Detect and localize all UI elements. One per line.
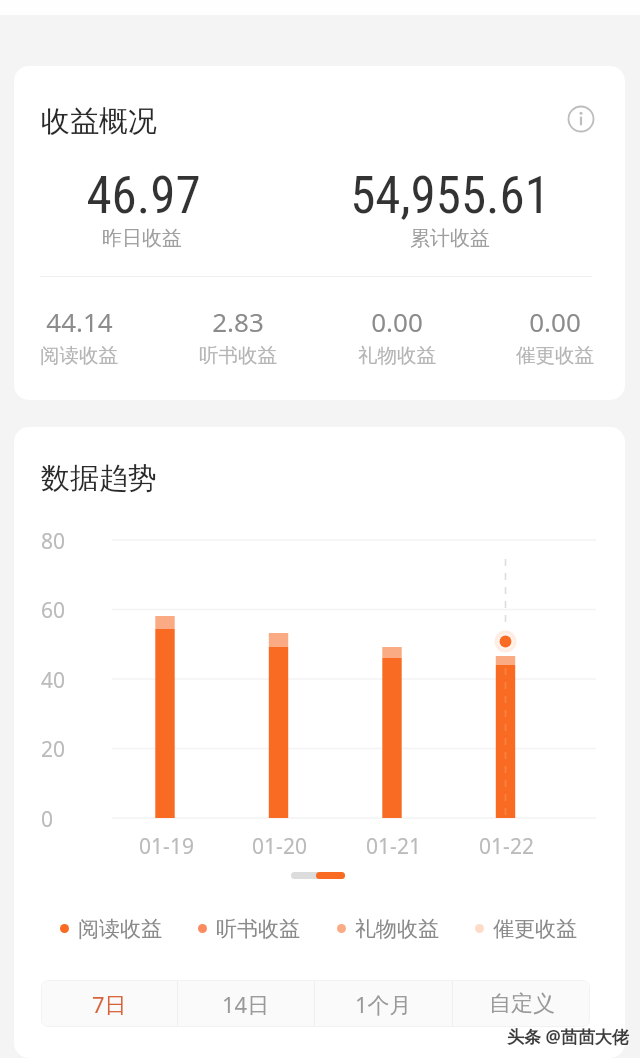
staticText: 数据趋势 bbox=[41, 460, 157, 497]
staticText: 礼物收益 bbox=[355, 916, 439, 940]
staticText: 0.00 bbox=[371, 304, 423, 339]
staticText: 20 bbox=[41, 735, 66, 764]
button[interactable]: 阅读收益 bbox=[60, 916, 162, 940]
button[interactable] bbox=[14, 300, 144, 370]
staticText: 01-20 bbox=[252, 832, 307, 861]
staticText: 60 bbox=[41, 596, 66, 625]
staticText: 54,955.61 bbox=[350, 166, 550, 226]
staticText: 01-21 bbox=[366, 832, 421, 861]
button[interactable]: 7日 bbox=[41, 980, 177, 1027]
staticText: 46.97 bbox=[86, 166, 201, 226]
staticText: 80 bbox=[41, 527, 66, 556]
staticText: 1个月 bbox=[355, 989, 412, 1019]
staticText: 头条 @茴茴大佬 bbox=[507, 1025, 629, 1048]
button[interactable]: 催更收益 bbox=[475, 916, 577, 940]
button[interactable]: 听书收益 bbox=[198, 916, 300, 940]
staticText: 7日 bbox=[92, 989, 127, 1019]
staticText: 听书收益 bbox=[199, 343, 277, 368]
staticText: 听书收益 bbox=[216, 916, 300, 940]
staticText: 01-22 bbox=[479, 832, 534, 861]
staticText: 14日 bbox=[222, 989, 270, 1019]
button[interactable]: 收益说明 bbox=[561, 99, 601, 139]
staticText: 阅读收益 bbox=[40, 343, 118, 368]
staticText: 0.00 bbox=[529, 304, 581, 339]
staticText: 累计收益 bbox=[410, 226, 490, 251]
button[interactable]: 1个月 bbox=[315, 980, 452, 1027]
button[interactable]: 14日 bbox=[178, 980, 314, 1027]
button[interactable]: 自定义 bbox=[453, 980, 590, 1027]
staticText: 昨日收益 bbox=[102, 226, 182, 251]
staticText: 自定义 bbox=[489, 990, 555, 1018]
staticText: 44.14 bbox=[46, 304, 113, 339]
staticText: 催更收益 bbox=[493, 916, 577, 940]
staticText: 收益概况 bbox=[41, 103, 157, 140]
staticText: 阅读收益 bbox=[78, 916, 162, 940]
button[interactable] bbox=[490, 300, 620, 370]
staticText: 2.83 bbox=[212, 304, 264, 339]
staticText: 催更收益 bbox=[516, 343, 594, 368]
staticText: 40 bbox=[41, 666, 66, 695]
staticText: 礼物收益 bbox=[358, 343, 436, 368]
button[interactable] bbox=[173, 300, 303, 370]
button[interactable] bbox=[332, 300, 462, 370]
button[interactable]: 礼物收益 bbox=[337, 916, 439, 940]
staticText: 0 bbox=[41, 805, 54, 834]
staticText: 01-19 bbox=[139, 832, 194, 861]
